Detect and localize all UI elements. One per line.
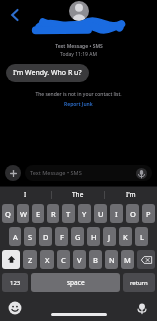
button[interactable]: Add attachment [5, 165, 21, 181]
staticText: T [66, 209, 71, 219]
button[interactable]: T [62, 204, 75, 223]
button[interactable]: return [123, 273, 155, 292]
button[interactable]: V [73, 250, 86, 269]
staticText: I'm Wendy. Who R u? [13, 68, 82, 78]
staticText: Text Message • SMS [55, 43, 103, 50]
staticText: Q [5, 209, 11, 219]
button[interactable]: P [142, 204, 155, 223]
button[interactable]: Dictation [135, 301, 149, 315]
staticText: W [20, 209, 27, 219]
button[interactable]: I [0, 187, 51, 202]
button[interactable]: O [126, 204, 139, 223]
button[interactable]: E [32, 204, 44, 223]
button[interactable]: R [47, 204, 59, 223]
button[interactable]: Shift [2, 250, 20, 269]
button[interactable]: F [55, 227, 68, 246]
staticText: G [75, 232, 81, 242]
staticText: K [123, 232, 128, 242]
button[interactable]: Delete [137, 250, 155, 269]
button[interactable]: Audio message [136, 168, 147, 179]
button[interactable]: G [71, 227, 84, 246]
button[interactable]: X [40, 250, 54, 269]
staticText: P [146, 209, 151, 219]
staticText: U [98, 209, 104, 219]
staticText: Today 11:19 AM [60, 51, 97, 58]
staticText: R [51, 209, 56, 219]
button[interactable]: 123 [2, 273, 28, 292]
staticText: Y [82, 209, 87, 219]
button[interactable]: Q [2, 204, 14, 223]
staticText: A [13, 232, 18, 242]
button[interactable]: D [39, 227, 52, 246]
staticText: I [24, 190, 27, 199]
button[interactable]: U [94, 204, 107, 223]
button[interactable]: H [87, 227, 100, 246]
staticText: L [140, 232, 144, 242]
button[interactable]: B [89, 250, 102, 269]
staticText: B [93, 255, 98, 265]
staticText: H [91, 232, 97, 242]
button[interactable]: I'm Wendy. Who R u? [6, 64, 89, 82]
staticText: N [109, 255, 115, 265]
staticText: D [43, 232, 49, 242]
staticText: Report Junk [64, 101, 93, 108]
staticText: The sender is not in your contact list. [35, 91, 122, 98]
staticText: Text Message • SMS [30, 169, 136, 177]
button[interactable]: I [110, 204, 123, 223]
button[interactable]: A [9, 227, 21, 246]
button[interactable]: space [31, 273, 120, 292]
button[interactable]: Contact avatar [69, 1, 89, 21]
button[interactable]: Z [23, 250, 37, 269]
button[interactable]: I'm [105, 187, 157, 202]
button[interactable]: Report Junk [60, 100, 97, 109]
button[interactable]: Y [78, 204, 91, 223]
staticText: Z [28, 255, 33, 265]
button[interactable]: K [119, 227, 132, 246]
staticText: V [77, 255, 82, 265]
staticText: C [61, 255, 66, 265]
staticText: space [67, 278, 85, 287]
staticText: I'm [126, 190, 136, 199]
staticText: I [115, 209, 118, 219]
button[interactable]: N [105, 250, 118, 269]
button[interactable]: C [57, 250, 70, 269]
staticText: X [45, 255, 50, 265]
staticText: J [108, 232, 111, 242]
staticText: O [130, 209, 136, 219]
staticText: E [36, 209, 41, 219]
button[interactable]: Back [4, 4, 26, 26]
button[interactable]: M [121, 250, 134, 269]
staticText: return [130, 279, 148, 287]
staticText: M [124, 255, 131, 265]
button[interactable]: L [135, 227, 148, 246]
button[interactable]: Emoji [8, 301, 22, 315]
staticText: F [60, 232, 64, 242]
staticText: 123 [10, 279, 21, 287]
button[interactable]: S [24, 227, 36, 246]
button[interactable]: J [103, 227, 116, 246]
staticText: S [28, 232, 33, 242]
staticText: The [72, 190, 84, 199]
button[interactable]: Text Message • SMS [25, 165, 152, 181]
button[interactable]: The [52, 187, 104, 202]
button[interactable]: W [17, 204, 29, 223]
